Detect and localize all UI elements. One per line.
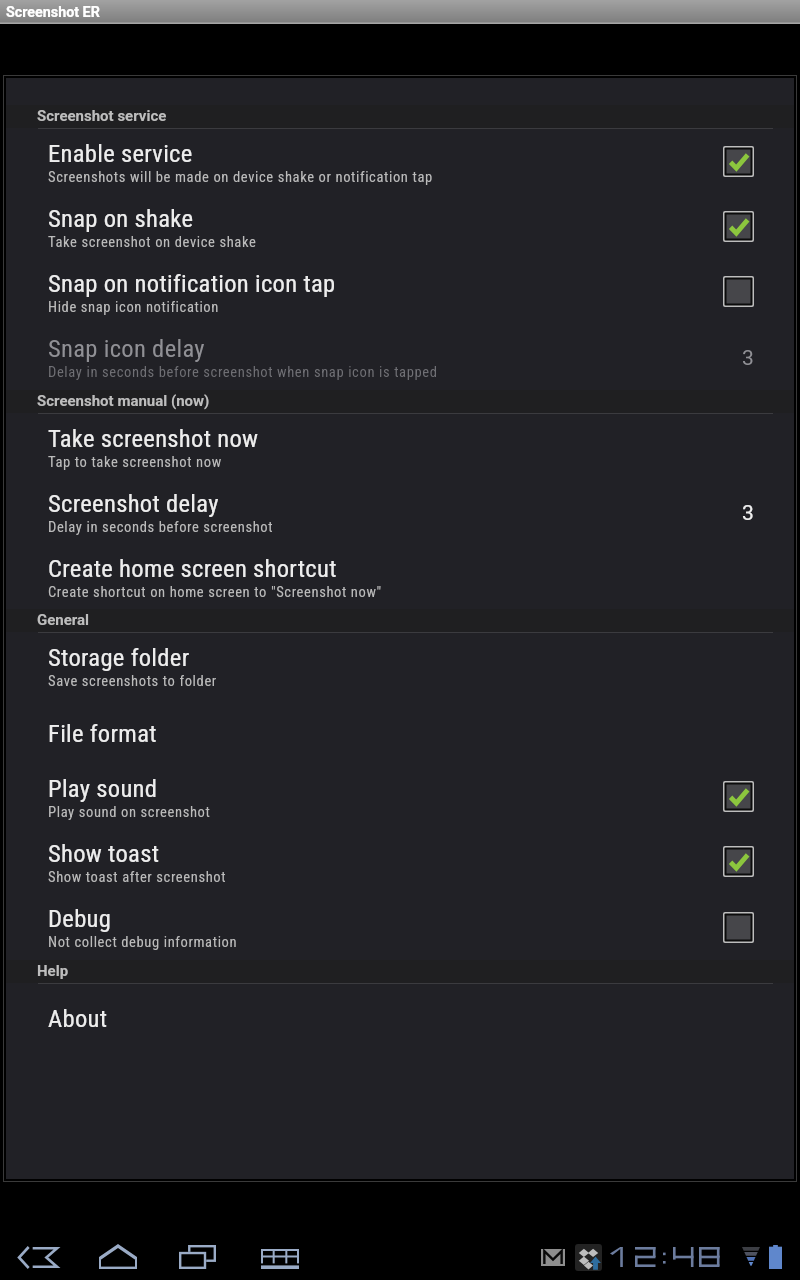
button[interactable]: Keyboard bbox=[249, 1239, 311, 1279]
staticText: Save screenshots to folder bbox=[48, 672, 217, 689]
staticText: Show toast after screenshot bbox=[48, 868, 227, 885]
staticText: Enable service bbox=[48, 139, 193, 168]
staticText: Screenshot service bbox=[37, 107, 167, 125]
button[interactable]: About bbox=[6, 984, 794, 1049]
button[interactable]: Show toast bbox=[6, 829, 794, 894]
staticText: Debug bbox=[48, 904, 112, 933]
staticText: Snap icon delay bbox=[48, 334, 205, 363]
staticText: Not collect debug information bbox=[48, 933, 238, 950]
staticText: Screenshot delay bbox=[48, 489, 219, 518]
button[interactable]: Unchecked bbox=[723, 276, 754, 307]
button[interactable]: Play sound bbox=[6, 764, 794, 829]
staticText: Play sound bbox=[48, 774, 158, 803]
button[interactable]: Snap icon delay bbox=[6, 324, 794, 390]
button[interactable]: Checked bbox=[723, 846, 754, 877]
staticText: Take screenshot on device shake bbox=[48, 233, 257, 250]
staticText: Screenshot manual (now) bbox=[37, 392, 210, 410]
button[interactable]: Recent apps bbox=[167, 1235, 228, 1279]
staticText: General bbox=[37, 611, 90, 629]
staticText: Storage folder bbox=[48, 643, 190, 672]
button[interactable]: Snap on shake bbox=[6, 194, 794, 259]
button[interactable]: Checked bbox=[723, 781, 754, 812]
staticText: File format bbox=[48, 719, 157, 748]
button[interactable]: File format bbox=[6, 699, 794, 764]
button[interactable]: Debug bbox=[6, 894, 794, 960]
button[interactable]: Back bbox=[7, 1237, 69, 1278]
staticText: About bbox=[48, 1004, 108, 1033]
button[interactable]: Storage folder bbox=[6, 633, 794, 699]
button[interactable]: Create home screen shortcut bbox=[6, 544, 794, 609]
staticText: Snap on shake bbox=[48, 204, 194, 233]
staticText: 3 bbox=[742, 501, 754, 526]
staticText: 3 bbox=[742, 346, 754, 371]
staticText: Screenshot ER bbox=[6, 4, 100, 21]
staticText: Hide snap icon notification bbox=[48, 298, 219, 315]
button[interactable]: Checked bbox=[723, 211, 754, 242]
button[interactable]: Enable service bbox=[6, 129, 794, 194]
staticText: Create shortcut on home screen to "Scree… bbox=[48, 583, 382, 600]
staticText: Take screenshot now bbox=[48, 424, 259, 453]
staticText: Delay in seconds before screenshot bbox=[48, 518, 274, 535]
staticText: Show toast bbox=[48, 839, 160, 868]
staticText: Play sound on screenshot bbox=[48, 803, 211, 820]
button[interactable]: Home bbox=[87, 1234, 149, 1279]
staticText: Delay in seconds before screenshot when … bbox=[48, 363, 438, 380]
button[interactable]: Checked bbox=[723, 146, 754, 177]
button[interactable]: Unchecked bbox=[723, 912, 754, 943]
button[interactable]: Snap on notification icon tap bbox=[6, 259, 794, 324]
staticText: Snap on notification icon tap bbox=[48, 269, 336, 298]
button[interactable]: Screenshot delay bbox=[6, 479, 794, 544]
staticText: Help bbox=[37, 962, 69, 980]
staticText: Tap to take screenshot now bbox=[48, 453, 222, 470]
button[interactable]: Take screenshot now bbox=[6, 414, 794, 479]
staticText: Create home screen shortcut bbox=[48, 554, 337, 583]
staticText: Screenshots will be made on device shake… bbox=[48, 168, 433, 185]
